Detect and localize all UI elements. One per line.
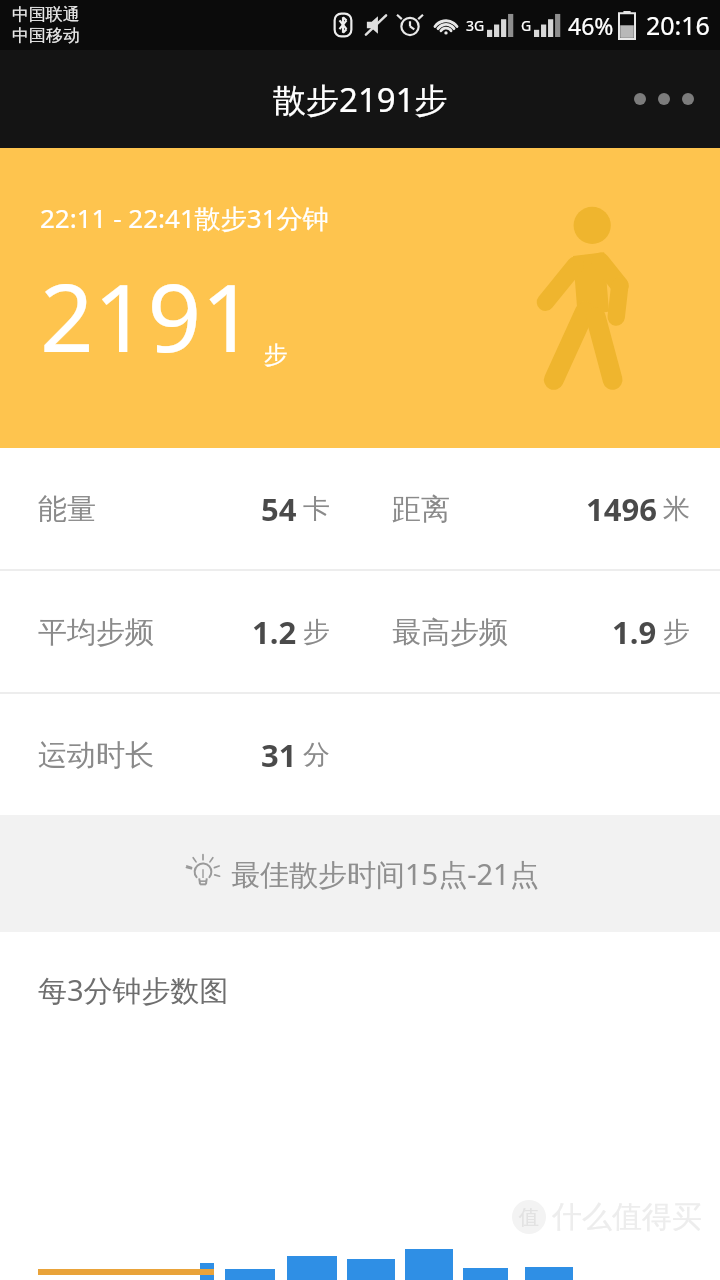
staticText: 分 <box>303 738 330 772</box>
staticText: 2191 <box>40 252 256 380</box>
staticText: 54 <box>261 488 297 530</box>
staticText: 中国联通 <box>12 4 80 25</box>
staticText: 每3分钟步数图 <box>38 970 229 1010</box>
staticText: 3G <box>466 16 485 35</box>
staticText: 运动时长 <box>38 737 154 774</box>
button[interactable]: 能量 <box>0 448 720 569</box>
staticText: 值 <box>519 1205 539 1230</box>
staticText: 1.9 <box>612 611 657 653</box>
staticText: 散步2191步 <box>273 77 448 122</box>
button[interactable]: More options <box>622 79 706 119</box>
staticText: 步 <box>303 615 330 649</box>
button[interactable]: 平均步频 <box>0 571 720 692</box>
staticText: 46% <box>568 10 614 41</box>
staticText: 31 <box>261 734 297 776</box>
staticText: 最佳散步时间15点-21点 <box>231 854 539 894</box>
staticText: G <box>521 16 532 35</box>
staticText: 1.2 <box>252 611 297 653</box>
button[interactable]: 最佳散步时间15点-21点 <box>0 815 720 932</box>
staticText: 距离 <box>392 491 450 528</box>
staticText: 平均步频 <box>38 614 154 651</box>
staticText: 什么值得买 <box>552 1198 702 1236</box>
staticText: 米 <box>663 492 690 526</box>
staticText: 步 <box>663 615 690 649</box>
staticText: 20:16 <box>646 8 710 42</box>
staticText: 22:11 - 22:41散步31分钟 <box>40 200 329 236</box>
staticText: 最高步频 <box>392 614 508 651</box>
staticText: 步 <box>264 340 288 370</box>
staticText: 能量 <box>38 491 96 528</box>
staticText: 1496 <box>586 488 657 530</box>
button[interactable]: 运动时长 <box>0 694 720 815</box>
staticText: 卡 <box>303 492 330 526</box>
button[interactable]: 22:11 - 22:41散步31分钟 <box>0 148 720 448</box>
staticText: 中国移动 <box>12 25 80 46</box>
